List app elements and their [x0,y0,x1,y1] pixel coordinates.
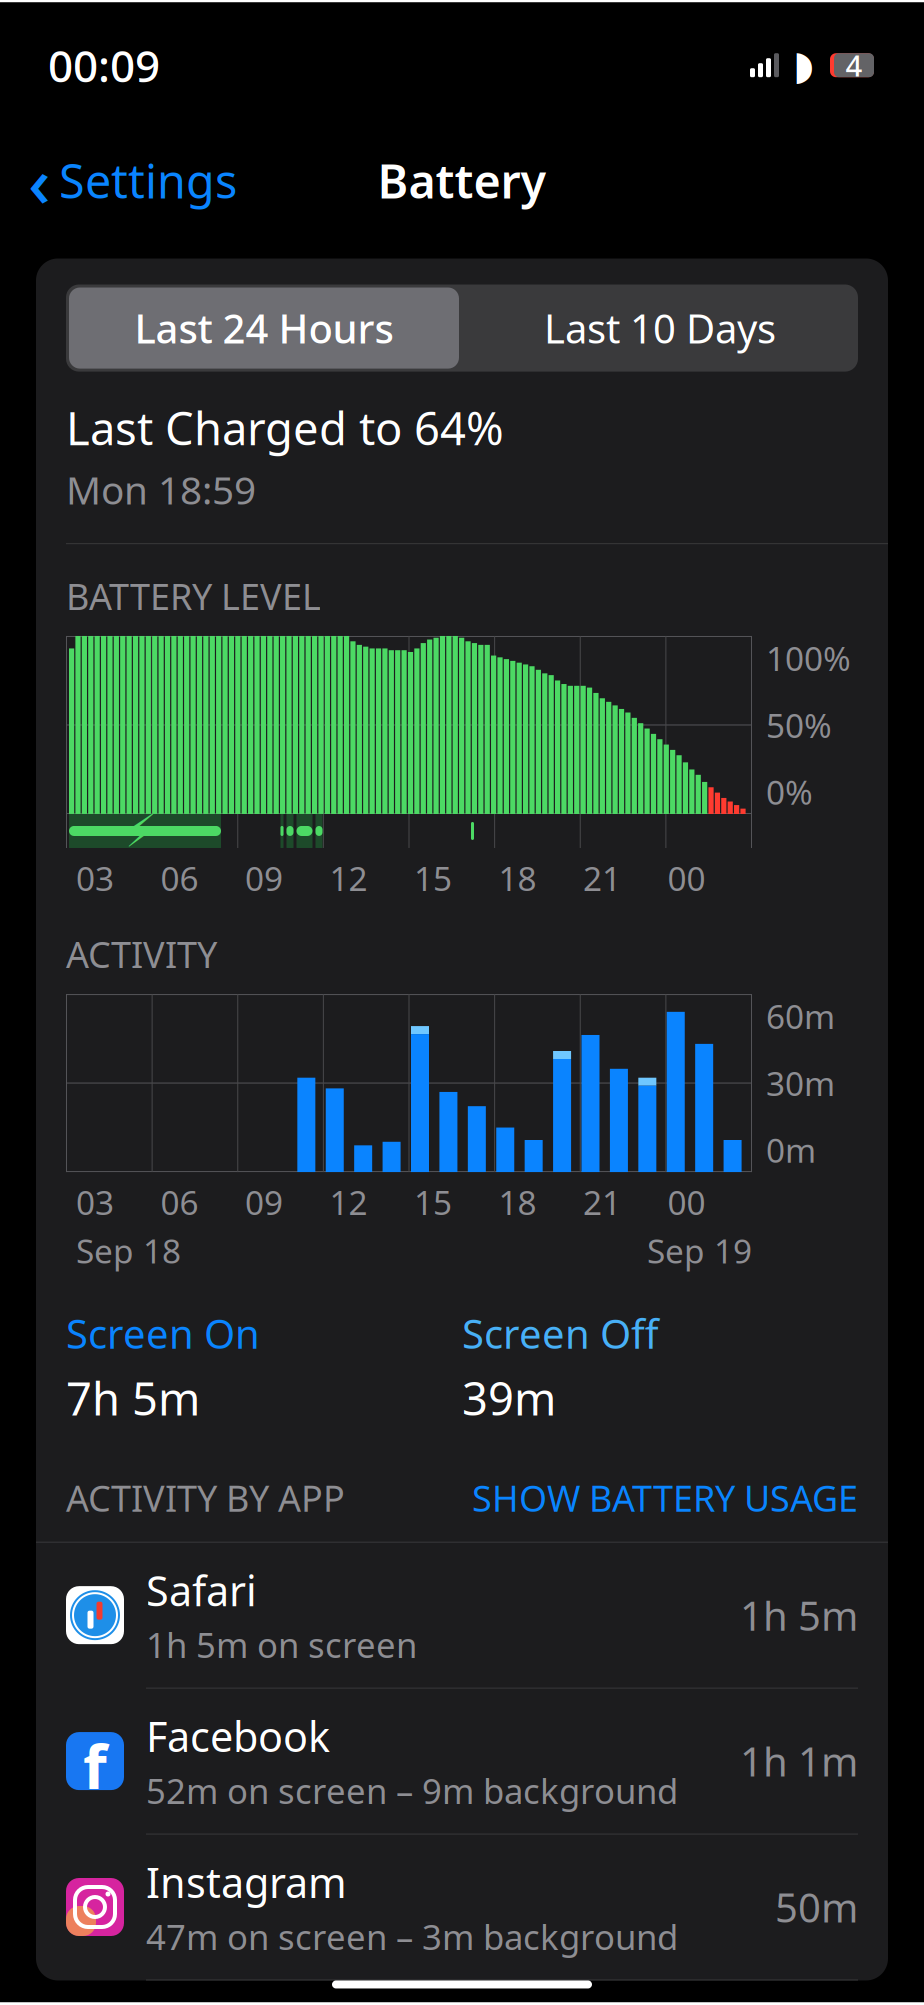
staticText: 12 [329,856,367,900]
staticText: Last Charged to 64% [66,398,504,458]
staticText: 00 [667,856,705,900]
staticText: 09 [245,1180,283,1224]
staticText: 1h 1m [740,1734,858,1788]
staticText: 47m on screen – 3m background [146,1913,678,1959]
staticText: 1h 5m [740,1589,858,1642]
staticText: 50% [766,703,832,747]
staticText: 06 [160,1180,198,1224]
staticText: 39m [462,1368,556,1428]
staticText: 30m [766,1061,835,1105]
button[interactable]: Safari [66,1543,858,1688]
staticText: 4 [845,46,862,85]
staticText: Sep 18 [76,1228,181,1273]
staticText: 7h 5m [66,1368,200,1428]
staticText: 18 [498,856,536,900]
button[interactable]: ‹ [22,128,243,232]
staticText: ACTIVITY BY APP [66,1474,345,1522]
staticText: Mon 18:59 [66,464,256,515]
staticText: Last 10 Days [544,301,776,355]
staticText: Battery [377,149,546,211]
staticText: BATTERY LEVEL [66,572,321,620]
button[interactable]: Last 24 Hours [66,284,858,372]
staticText: 52m on screen – 9m background [146,1767,678,1813]
staticText: ‹ [28,134,51,226]
staticText: ◗ [793,42,814,88]
staticText: 03 [76,856,114,900]
staticText: 18 [498,1180,536,1224]
staticText: Instagram [146,1854,347,1909]
staticText: Screen On [66,1307,260,1360]
staticText: 03 [76,1180,114,1224]
staticText: 12 [329,1180,367,1224]
staticText: 15 [414,856,452,900]
staticText: 60m [766,994,835,1038]
staticText: Facebook [146,1709,330,1763]
button[interactable]: Instagram [66,1834,858,1979]
staticText: Screen Off [462,1307,659,1360]
staticText: Safari [146,1563,257,1618]
staticText: Settings [59,149,237,211]
staticText: 50m [775,1880,858,1933]
staticText: 1h 5m on screen [146,1622,417,1668]
staticText: SHOW BATTERY USAGE [472,1474,858,1522]
staticText: 00:09 [48,36,160,94]
button[interactable]: SHOW BATTERY USAGE [472,1474,858,1522]
staticText: 09 [245,856,283,900]
staticText: 21 [583,856,621,900]
staticText: 15 [414,1180,452,1224]
staticText: 21 [583,1180,621,1224]
staticText: ⚡︎ [125,805,157,857]
staticText: 100% [766,636,851,680]
staticText: 06 [160,856,198,900]
button[interactable]: f [66,1689,858,1833]
staticText: 0m [766,1128,816,1172]
staticText: Last 24 Hours [134,301,393,355]
staticText: f [83,1724,107,1806]
staticText: ACTIVITY [66,930,217,978]
staticText: 00 [667,1180,705,1224]
staticText: Sep 19 [647,1228,752,1273]
staticText: 0% [766,770,813,814]
